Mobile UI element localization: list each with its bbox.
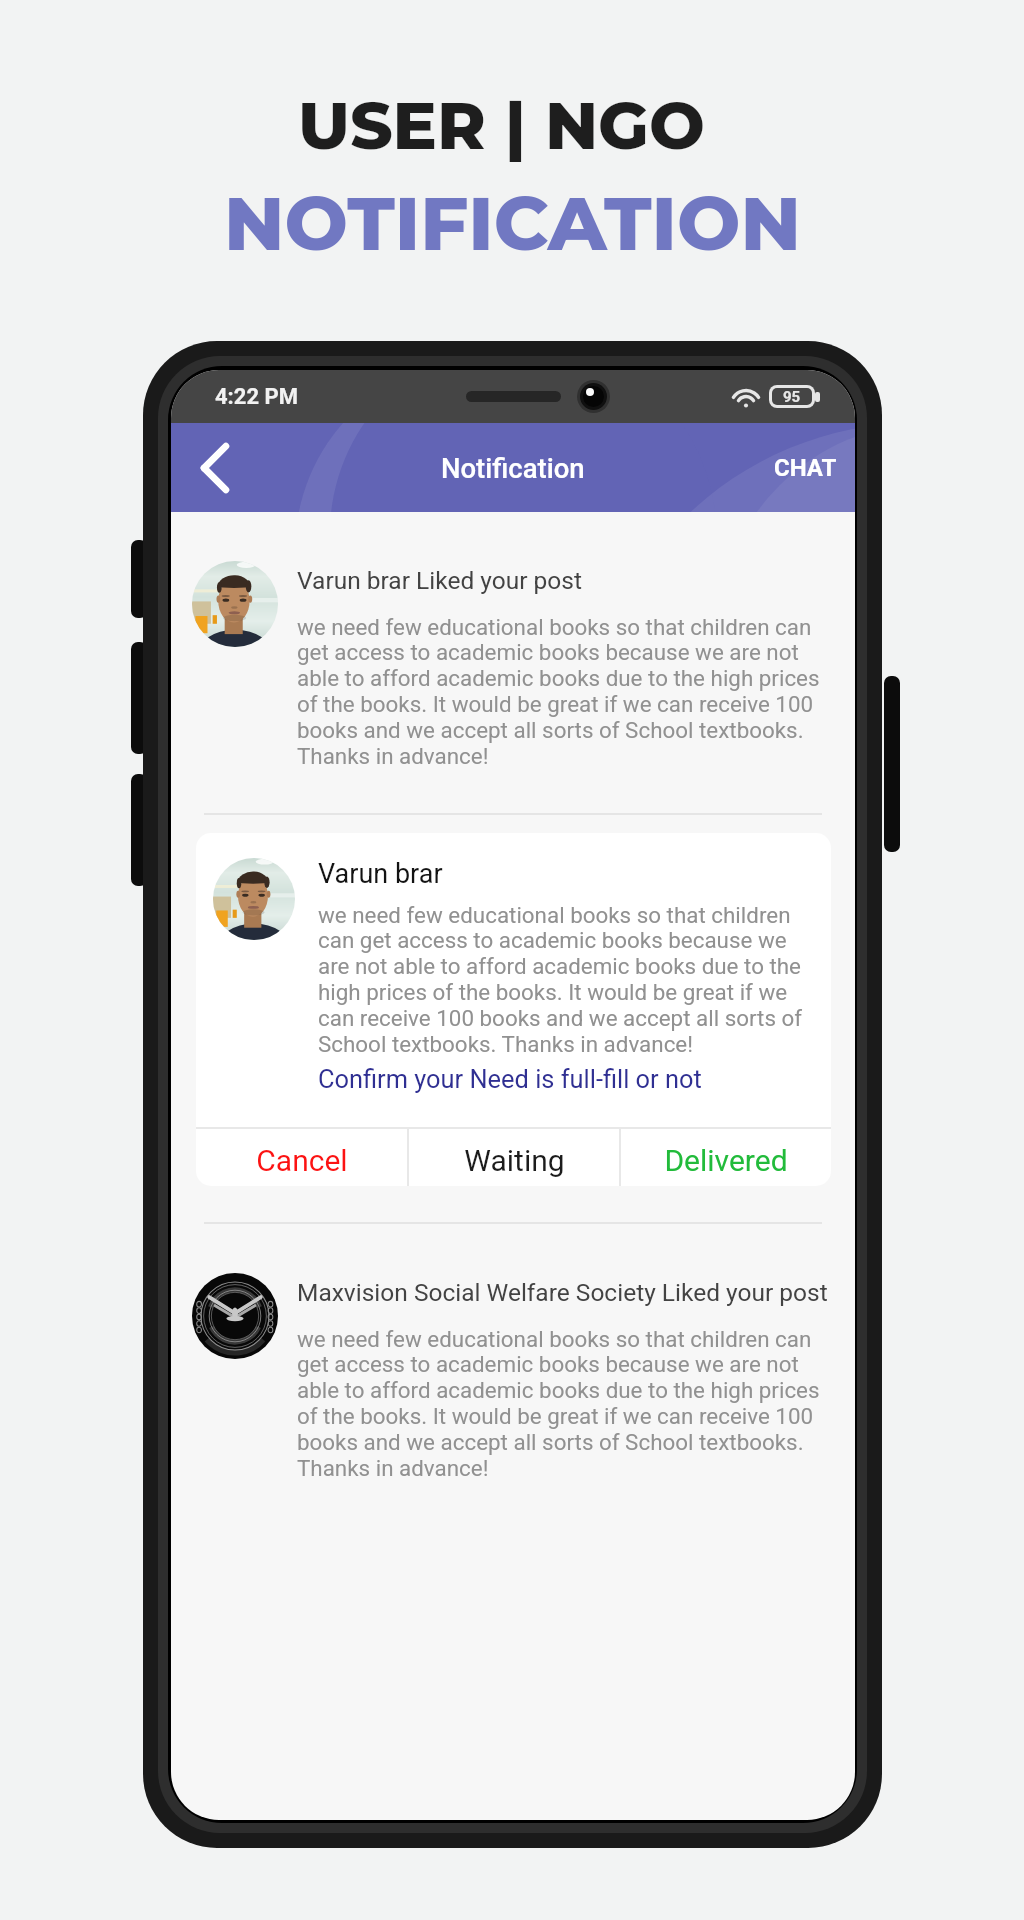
staticText: 95 xyxy=(783,388,801,405)
staticText: Maxvision Social Welfare Society Liked y… xyxy=(297,1278,828,1307)
staticText: we need few educational books so that ch… xyxy=(318,902,809,1058)
staticText: CHAT xyxy=(774,454,837,482)
staticText: we need few educational books so that ch… xyxy=(297,614,832,770)
staticText: Cancel xyxy=(256,1143,348,1178)
staticText: we need few educational books so that ch… xyxy=(297,1326,832,1482)
staticText: Varun brar xyxy=(318,858,443,890)
staticText: Varun brar Liked your post xyxy=(297,566,582,595)
button[interactable]: Back xyxy=(171,423,259,512)
button[interactable]: Cancel xyxy=(196,1129,407,1186)
staticText: USER | NGO xyxy=(298,85,705,165)
staticText: Waiting xyxy=(464,1143,565,1178)
button[interactable]: Delivered xyxy=(621,1129,831,1186)
button[interactable]: CHAT xyxy=(744,423,855,512)
staticText: Delivered xyxy=(664,1143,788,1178)
button[interactable]: Maxvision Social Welfare Society Liked y… xyxy=(171,1224,855,1522)
staticText: Notification xyxy=(441,452,585,484)
button[interactable]: Waiting xyxy=(409,1129,619,1186)
staticText: 4:22 PM xyxy=(215,384,298,410)
staticText: Confirm your Need is full-fill or not xyxy=(318,1064,702,1094)
button[interactable]: Varun brar Liked your post xyxy=(171,512,855,813)
staticText: NOTIFICATION xyxy=(224,177,801,268)
